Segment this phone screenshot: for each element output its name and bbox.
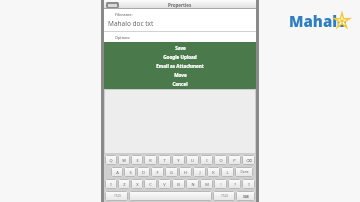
staticText: ⇧	[247, 182, 251, 187]
staticText: W	[122, 158, 126, 163]
button[interactable]: R	[144, 155, 157, 165]
staticText: N	[191, 182, 195, 187]
button[interactable]: O	[214, 155, 227, 165]
staticText: F	[156, 170, 159, 175]
staticText: I	[206, 158, 208, 163]
staticText: Email as Attachment	[156, 63, 204, 69]
button[interactable]: Google Upload	[104, 52, 256, 61]
button[interactable]: W	[118, 155, 130, 165]
button[interactable]: Move	[104, 70, 256, 79]
staticText: X	[136, 182, 139, 187]
button[interactable]: ?	[228, 179, 241, 189]
button[interactable]: E	[131, 155, 143, 165]
button[interactable]: U	[186, 155, 199, 165]
button[interactable]: Save	[104, 43, 256, 52]
staticText: K	[212, 170, 215, 175]
button[interactable]: Email as Attachment	[104, 61, 256, 70]
staticText: D	[142, 170, 145, 175]
button[interactable]: H	[179, 167, 192, 177]
staticText: ⇧	[109, 182, 113, 187]
button[interactable]: M	[200, 179, 213, 189]
button[interactable]: F	[151, 167, 164, 177]
button[interactable]: ⇧	[105, 179, 117, 189]
staticText: G	[170, 170, 173, 175]
staticText: Mahalo doc txt	[108, 19, 154, 28]
button[interactable]: Space	[129, 191, 212, 201]
staticText: Mahalo	[289, 11, 347, 31]
button[interactable]: V	[158, 179, 171, 189]
button[interactable]: ⇧	[242, 179, 255, 189]
button[interactable]: K	[207, 167, 220, 177]
staticText: V	[163, 182, 166, 187]
staticText: Done	[240, 170, 249, 174]
button[interactable]: J	[193, 167, 206, 177]
staticText: Cancel	[172, 81, 188, 87]
button[interactable]: !	[214, 179, 227, 189]
staticText: Properties	[168, 2, 192, 8]
staticText: U	[191, 158, 194, 163]
button[interactable]: Q	[105, 155, 117, 165]
button[interactable]: ⌫	[242, 155, 255, 165]
staticText: !	[220, 182, 222, 187]
staticText: ⌨	[243, 194, 249, 199]
button[interactable]: L	[221, 167, 234, 177]
button[interactable]: T	[158, 155, 171, 165]
button[interactable]: Back	[106, 2, 119, 8]
button[interactable]: B	[172, 179, 185, 189]
staticText: ?	[234, 182, 236, 187]
button[interactable]: I	[200, 155, 213, 165]
staticText: ⌫	[246, 158, 252, 163]
staticText: P	[233, 158, 236, 163]
button[interactable]: C	[144, 179, 157, 189]
staticText: Z	[123, 182, 126, 187]
staticText: C	[149, 182, 152, 187]
staticText: Y	[177, 158, 180, 163]
staticText: Google Upload	[163, 54, 197, 60]
button[interactable]: P	[228, 155, 241, 165]
button[interactable]: X	[131, 179, 143, 189]
staticText: T	[163, 158, 166, 163]
button[interactable]: ⌨	[236, 191, 255, 201]
staticText: M	[205, 182, 209, 187]
staticText: B	[177, 182, 180, 187]
button[interactable]: Y	[172, 155, 185, 165]
button[interactable]: A	[111, 167, 123, 177]
button[interactable]: Done	[235, 167, 253, 177]
button[interactable]: .?123	[105, 191, 128, 201]
button[interactable]: D	[137, 167, 150, 177]
button[interactable]: G	[165, 167, 178, 177]
staticText: Move	[174, 72, 187, 78]
staticText: L	[226, 170, 229, 175]
staticText: S	[129, 170, 132, 175]
staticText: R	[149, 158, 152, 163]
staticText: Q	[109, 158, 113, 163]
staticText: O	[219, 158, 223, 163]
staticText: Filename:	[115, 12, 133, 17]
button[interactable]: Cancel	[104, 79, 256, 88]
staticText: H	[184, 170, 187, 175]
staticText: Options:	[115, 35, 131, 40]
staticText: E	[136, 158, 139, 163]
button[interactable]: Z	[118, 179, 130, 189]
staticText: .?123	[113, 194, 121, 198]
staticText: J	[199, 170, 201, 175]
staticText: Save	[175, 45, 186, 51]
staticText: A	[116, 170, 119, 175]
button[interactable]: .?123	[213, 191, 235, 201]
button[interactable]: S	[124, 167, 136, 177]
button[interactable]: N	[186, 179, 199, 189]
staticText: .?123	[220, 194, 228, 198]
